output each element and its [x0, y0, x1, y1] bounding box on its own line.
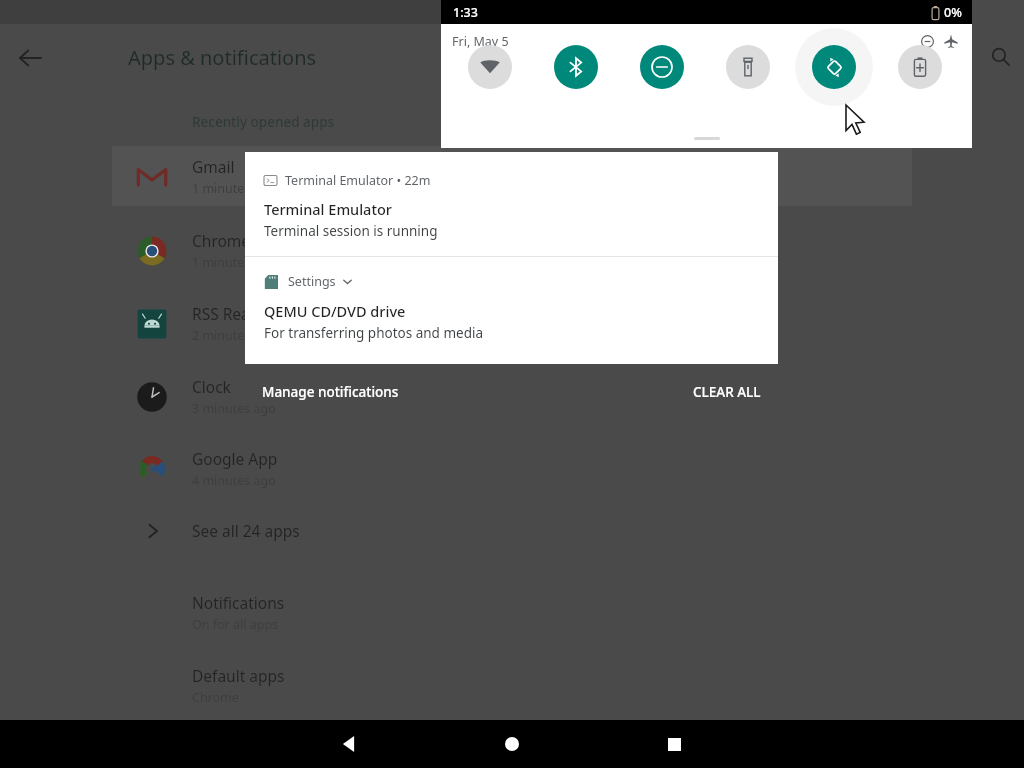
staticText: For transferring photos and media	[264, 324, 484, 342]
staticText: 2 minutes ago	[192, 327, 276, 344]
staticText: 1 minute ago	[192, 180, 270, 197]
staticText: See all 24 apps	[192, 520, 300, 541]
staticText: Manage notifications	[262, 383, 399, 401]
staticText: 1 minute ago	[192, 254, 270, 271]
staticText: Apps & notifications	[128, 44, 317, 71]
staticText: On for all apps	[192, 616, 279, 633]
button[interactable]: Wi-Fi	[461, 38, 519, 96]
staticText: Chrome	[192, 689, 239, 706]
staticText: Clock	[192, 376, 231, 397]
staticText: Terminal Emulator	[264, 199, 392, 219]
staticText: 3 minutes ago	[192, 400, 276, 417]
staticText: Fri, May 5	[452, 33, 509, 50]
button[interactable]: See all 24 apps	[112, 508, 912, 554]
staticText: 4 minutes ago	[192, 472, 276, 489]
button[interactable]: Battery Saver	[891, 38, 949, 96]
button[interactable]: RSS Reader	[112, 294, 912, 354]
button[interactable]: Auto-rotate	[805, 38, 863, 96]
staticText: CLEAR ALL	[693, 383, 761, 401]
staticText: Google App	[192, 448, 278, 469]
staticText: 1:33	[453, 4, 478, 21]
button[interactable]: Back	[325, 720, 373, 768]
staticText: 0%	[944, 4, 962, 21]
button[interactable]: Search	[980, 36, 1020, 76]
staticText: Default apps	[192, 665, 285, 686]
button[interactable]: Back	[10, 38, 50, 78]
button[interactable]: Do not disturb	[918, 32, 936, 50]
button[interactable]: Chrome	[112, 221, 912, 281]
button[interactable]: Flashlight	[719, 38, 777, 96]
button[interactable]: Gmail	[112, 147, 912, 207]
staticText: Terminal Emulator • 22m	[285, 172, 431, 189]
button[interactable]: Terminal Emulator • 22m	[245, 152, 778, 256]
staticText: Recently opened apps	[192, 113, 335, 131]
button[interactable]: Google App	[112, 439, 912, 499]
staticText: Settings	[288, 273, 336, 290]
button[interactable]: Recent apps	[650, 720, 698, 768]
button[interactable]: Clock	[112, 367, 912, 427]
staticText: Gmail	[192, 156, 235, 177]
button[interactable]: Manage notifications	[245, 379, 416, 405]
staticText: Notifications	[192, 592, 285, 613]
staticText: RSS Reader	[192, 303, 275, 324]
staticText: Terminal session is running	[264, 222, 438, 240]
button[interactable]: Do not disturb	[633, 38, 691, 96]
staticText: Chrome	[192, 230, 251, 251]
button[interactable]: Airplane mode	[942, 32, 960, 50]
staticText: QEMU CD/DVD drive	[264, 301, 406, 321]
button[interactable]: Bluetooth	[547, 38, 605, 96]
button[interactable]: CLEAR ALL	[676, 379, 778, 405]
button[interactable]: Home	[488, 720, 536, 768]
button[interactable]: Settings	[245, 257, 778, 360]
